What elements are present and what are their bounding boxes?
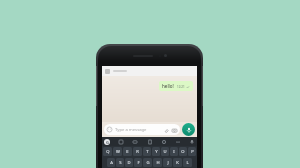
staticText: O <box>181 149 185 155</box>
button[interactable]: Google search <box>104 139 110 145</box>
button[interactable]: Record voice message <box>182 123 195 136</box>
button[interactable]: K <box>173 158 182 167</box>
button[interactable]: A <box>107 158 115 167</box>
button[interactable]: R <box>133 147 142 156</box>
button[interactable]: Keyboard tool 4 <box>161 139 167 145</box>
staticText: hello! <box>162 83 174 89</box>
button[interactable]: hello! <box>159 81 193 91</box>
button[interactable]: Keyboard tool 1 <box>118 139 124 145</box>
staticText: W <box>116 149 120 155</box>
staticText: Y <box>155 149 158 155</box>
button[interactable] <box>102 66 197 76</box>
button[interactable]: D <box>125 158 133 167</box>
button[interactable]: Keyboard tool 5 <box>175 139 181 145</box>
staticText: L <box>186 160 189 166</box>
button[interactable]: I <box>170 147 178 156</box>
button[interactable]: G <box>143 158 152 167</box>
button[interactable]: J <box>163 158 172 167</box>
staticText: P <box>191 149 194 155</box>
button[interactable]: F <box>134 158 142 167</box>
button[interactable]: Keyboard tool 3 <box>147 139 153 145</box>
staticText: Q <box>106 149 110 155</box>
staticText: E <box>126 149 129 155</box>
staticText: G <box>106 140 109 145</box>
button[interactable]: S <box>116 158 124 167</box>
button[interactable]: U <box>161 147 169 156</box>
staticText: D <box>127 160 131 166</box>
button[interactable]: O <box>179 147 187 156</box>
staticText: 12:21 <box>177 85 185 89</box>
button[interactable]: P <box>188 147 196 156</box>
staticText: R <box>136 149 139 155</box>
button[interactable]: Q <box>103 147 112 156</box>
button[interactable]: Y <box>152 147 160 156</box>
staticText: K <box>176 160 179 166</box>
button[interactable]: Camera <box>171 127 177 133</box>
button[interactable]: Attach <box>163 127 169 133</box>
staticText: I <box>173 149 175 155</box>
button[interactable]: Type a message <box>104 124 180 135</box>
button[interactable]: Keyboard tool 2 <box>132 139 138 145</box>
button[interactable]: H <box>153 158 162 167</box>
staticText: U <box>163 149 167 155</box>
staticText: G <box>146 160 150 166</box>
staticText: H <box>156 160 160 166</box>
button[interactable]: T <box>143 147 151 156</box>
staticText: F <box>137 160 140 166</box>
button[interactable]: E <box>123 147 132 156</box>
staticText: S <box>119 160 122 166</box>
button[interactable]: Voice input <box>189 139 195 145</box>
button[interactable]: W <box>113 147 122 156</box>
staticText: Type a message <box>115 127 147 133</box>
staticText: J <box>167 160 169 166</box>
staticText: A <box>110 160 113 166</box>
staticText: T <box>146 149 149 155</box>
button[interactable]: L <box>183 158 192 167</box>
